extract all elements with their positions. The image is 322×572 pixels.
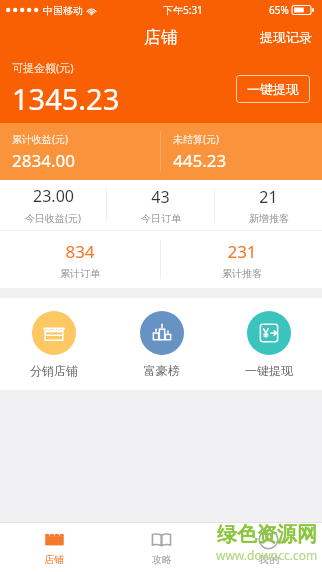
staticText: 可提金额(元) bbox=[12, 60, 74, 75]
staticText: 未结算(元) bbox=[173, 132, 219, 146]
button[interactable]: 提现记录 bbox=[250, 23, 322, 51]
staticText: 攻略 bbox=[152, 553, 172, 566]
button[interactable]: 21 bbox=[215, 180, 322, 230]
button[interactable]: 攻略 bbox=[108, 523, 215, 572]
staticText: 今日收益(元) bbox=[25, 211, 81, 225]
other: 店铺 bbox=[44, 529, 65, 550]
staticText: 21 bbox=[259, 186, 278, 208]
button[interactable]: 231 bbox=[161, 231, 322, 288]
staticText: 我的 bbox=[259, 553, 279, 566]
staticText: 834 bbox=[65, 240, 95, 263]
button[interactable]: 未结算(元) bbox=[161, 123, 322, 180]
staticText: 2834.00 bbox=[12, 149, 75, 172]
staticText: www.downcc.com bbox=[216, 547, 318, 563]
button[interactable]: 分销店铺 bbox=[0, 298, 108, 390]
button[interactable]: 一键提现 bbox=[236, 75, 310, 103]
staticText: 累计推客 bbox=[222, 267, 262, 280]
button[interactable]: 834 bbox=[0, 231, 160, 288]
staticText: 231 bbox=[227, 240, 257, 263]
staticText: 1345.23 bbox=[12, 79, 120, 118]
button[interactable]: 23.00 bbox=[0, 180, 106, 230]
staticText: 445.23 bbox=[173, 149, 227, 172]
staticText: 一键提现 bbox=[247, 81, 299, 97]
staticText: 新增推客 bbox=[249, 212, 289, 225]
staticText: 43 bbox=[151, 186, 170, 208]
staticText: 提现记录 bbox=[260, 29, 312, 45]
button[interactable]: 店铺 bbox=[0, 523, 108, 572]
staticText: 一键提现 bbox=[245, 363, 293, 378]
other: 攻略 bbox=[151, 529, 172, 550]
staticText: 今日订单 bbox=[141, 212, 181, 225]
staticText: 店铺 bbox=[44, 553, 64, 566]
button[interactable]: 富豪榜 bbox=[108, 298, 215, 390]
staticText: 累计收益(元) bbox=[12, 132, 68, 146]
button[interactable]: 一键提现 bbox=[215, 298, 322, 390]
staticText: 23.00 bbox=[33, 185, 74, 207]
staticText: 下午5:31 bbox=[163, 3, 203, 17]
button[interactable]: 我的 bbox=[215, 523, 322, 572]
button[interactable]: 43 bbox=[107, 180, 214, 230]
staticText: 累计订单 bbox=[60, 267, 100, 280]
staticText: 店铺 bbox=[144, 27, 178, 48]
button[interactable]: 累计收益(元) bbox=[0, 123, 160, 180]
staticText: 分销店铺 bbox=[30, 363, 78, 378]
staticText: 富豪榜 bbox=[144, 363, 180, 378]
staticText: 绿色资源网 bbox=[217, 522, 317, 547]
staticText: 中国移动 bbox=[43, 4, 83, 17]
staticText: 65% bbox=[269, 3, 289, 17]
other: 我的 bbox=[258, 529, 279, 550]
